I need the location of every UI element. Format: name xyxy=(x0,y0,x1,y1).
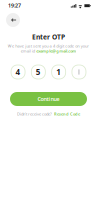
staticText: email id xyxy=(21,48,35,54)
button[interactable]: Resend Code xyxy=(54,111,80,117)
staticText: 1 xyxy=(56,67,61,77)
staticText: We have just sent you a 4 digit code on … xyxy=(8,43,89,49)
staticText: 5 xyxy=(36,67,41,77)
button[interactable]: Back xyxy=(6,13,20,27)
staticText: example@gmail.com xyxy=(36,48,76,54)
button[interactable]: OTP digit 2, 5 xyxy=(31,65,45,79)
staticText: Didn't receive code? xyxy=(17,111,52,117)
staticText: 19:27 xyxy=(8,2,21,9)
button[interactable]: OTP digit 3, 1 xyxy=(52,65,66,79)
staticText: Enter OTP xyxy=(32,33,65,41)
staticText: Continue xyxy=(37,95,59,103)
button[interactable]: OTP digit 1, 4 xyxy=(11,65,25,79)
staticText: 4 xyxy=(15,67,20,77)
staticText: Resend Code xyxy=(54,111,80,117)
button[interactable]: OTP digit 4, empty xyxy=(72,65,86,79)
button[interactable]: Continue xyxy=(10,92,87,106)
